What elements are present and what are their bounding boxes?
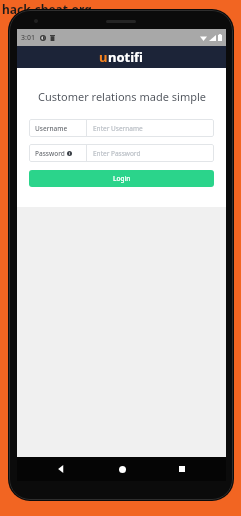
staticText: Enter Username: [93, 124, 143, 133]
other: Password info: [67, 151, 72, 156]
staticText: Enter Password: [93, 149, 141, 158]
button[interactable]: Password: [29, 144, 214, 162]
staticText: hack-cheat.org: [2, 1, 92, 17]
staticText: Username: [35, 124, 68, 133]
staticText: Password: [35, 149, 65, 158]
staticText: 3:01: [21, 33, 35, 43]
button[interactable]: Recent apps: [165, 457, 199, 481]
button[interactable]: Login: [29, 170, 214, 187]
button[interactable]: Username: [29, 119, 214, 137]
staticText: u: [99, 48, 108, 66]
staticText: notifi: [108, 48, 144, 66]
button[interactable]: Back: [44, 457, 78, 481]
staticText: Login: [113, 174, 131, 183]
staticText: Customer relations made simple: [38, 89, 206, 104]
button[interactable]: Home: [105, 457, 139, 481]
